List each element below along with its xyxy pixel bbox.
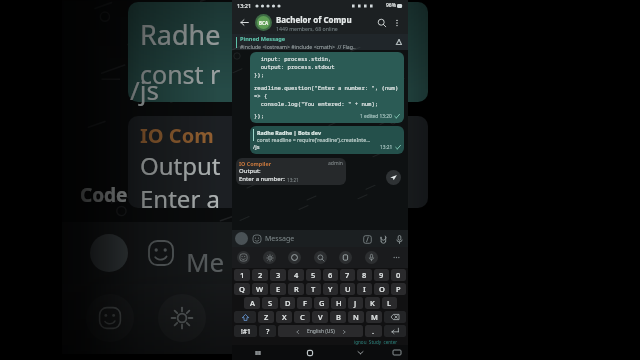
- staticText: W: [256, 284, 264, 294]
- staticText: C: [300, 312, 305, 322]
- button[interactable]: T: [306, 283, 321, 295]
- button[interactable]: J: [348, 297, 363, 309]
- button[interactable]: D: [280, 297, 295, 309]
- staticText: Enter a number:: [239, 175, 285, 183]
- staticText: console.log("You entered: " + num);: [254, 100, 379, 108]
- staticText: 6: [328, 270, 333, 280]
- button[interactable]: Message: [265, 234, 361, 244]
- staticText: output: process.stdout: [254, 63, 335, 71]
- staticText: Bachelor of Compu: [276, 14, 352, 25]
- staticText: 2: [258, 270, 263, 280]
- staticText: 96%: [386, 2, 396, 9]
- button[interactable]: Enter: [384, 325, 406, 337]
- staticText: Z: [264, 312, 269, 322]
- button[interactable]: 8: [357, 269, 372, 281]
- button[interactable]: B: [330, 311, 346, 323]
- button[interactable]: P: [391, 283, 406, 295]
- button[interactable]: Bachelor of Compu: [276, 14, 374, 32]
- button[interactable]: !#1: [234, 325, 257, 337]
- button[interactable]: Formatting: [361, 233, 373, 245]
- button[interactable]: Search: [374, 15, 390, 31]
- button[interactable]: V: [312, 311, 328, 323]
- button[interactable]: 5: [306, 269, 321, 281]
- staticText: input: process.stdin,: [254, 55, 332, 63]
- button[interactable]: Search: [314, 251, 327, 264]
- button[interactable]: N: [348, 311, 364, 323]
- staticText: N: [353, 312, 359, 322]
- button[interactable]: Pinned Message: [232, 34, 408, 50]
- button[interactable]: input: process.stdin,: [250, 52, 404, 123]
- button[interactable]: R: [288, 283, 304, 295]
- button[interactable]: U: [340, 283, 355, 295]
- button[interactable]: H: [331, 297, 346, 309]
- button[interactable]: C: [294, 311, 310, 323]
- button[interactable]: M: [366, 311, 382, 323]
- staticText: => {: [254, 92, 268, 100]
- button[interactable]: Home: [284, 345, 335, 360]
- button[interactable]: 1: [234, 269, 250, 281]
- staticText: 13:21: [287, 177, 299, 183]
- button[interactable]: 4: [288, 269, 304, 281]
- button[interactable]: X: [276, 311, 292, 323]
- button[interactable]: Hide keyboard: [335, 345, 386, 360]
- staticText: X: [282, 312, 287, 322]
- staticText: readline.question("Enter a number: ", (n…: [254, 84, 399, 92]
- button[interactable]: ?: [259, 325, 276, 337]
- button[interactable]: A: [244, 297, 260, 309]
- button[interactable]: Voice message: [393, 233, 405, 245]
- staticText: L: [387, 298, 392, 308]
- button[interactable]: W: [252, 283, 268, 295]
- button[interactable]: 2: [252, 269, 268, 281]
- button[interactable]: F: [297, 297, 312, 309]
- button[interactable]: Recents: [232, 345, 284, 360]
- button[interactable]: Settings: [263, 251, 276, 264]
- button[interactable]: K: [365, 297, 380, 309]
- staticText: J: [354, 298, 357, 308]
- staticText: BCA: [259, 20, 268, 26]
- button[interactable]: Forward: [386, 170, 401, 185]
- button[interactable]: Emoji: [251, 233, 262, 244]
- button[interactable]: More options: [390, 16, 404, 30]
- button[interactable]: Radhe Radhe | Bots dev: [250, 126, 404, 154]
- button[interactable]: Group avatar: [255, 14, 272, 31]
- staticText: ignou Study center: [354, 339, 398, 345]
- button[interactable]: Back: [236, 14, 253, 31]
- button[interactable]: I: [357, 283, 372, 295]
- button[interactable]: Keyboard layout: [386, 345, 408, 360]
- button[interactable]: Z: [258, 311, 274, 323]
- button[interactable]: Profile: [235, 232, 248, 245]
- button[interactable]: Y: [323, 283, 338, 295]
- button[interactable]: 9: [374, 269, 389, 281]
- staticText: B: [336, 312, 341, 322]
- button[interactable]: 3: [270, 269, 286, 281]
- staticText: D: [285, 298, 291, 308]
- staticText: admin: [328, 160, 343, 167]
- staticText: S: [268, 298, 273, 308]
- button[interactable]: Voice: [365, 251, 378, 264]
- button[interactable]: Space: [278, 325, 363, 337]
- staticText: #include <iostream> #include <cmath> // …: [240, 43, 356, 50]
- button[interactable]: Q: [234, 283, 250, 295]
- button[interactable]: Shift: [234, 311, 256, 323]
- button[interactable]: 7: [340, 269, 355, 281]
- staticText: });: [254, 71, 265, 79]
- button[interactable]: .: [365, 325, 382, 337]
- button[interactable]: G: [314, 297, 329, 309]
- button[interactable]: Clipboard: [339, 251, 352, 264]
- button[interactable]: S: [262, 297, 278, 309]
- staticText: 3: [276, 270, 281, 280]
- button[interactable]: L: [382, 297, 397, 309]
- button[interactable]: E: [270, 283, 286, 295]
- button[interactable]: More: [390, 251, 403, 264]
- button[interactable]: Attach: [377, 233, 389, 245]
- staticText: 5: [311, 270, 316, 280]
- staticText: English (US): [307, 328, 335, 335]
- button[interactable]: IO Compiler: [236, 158, 346, 185]
- button[interactable]: Theme: [288, 251, 301, 264]
- button[interactable]: O: [374, 283, 389, 295]
- button[interactable]: 0: [391, 269, 406, 281]
- staticText: 8: [362, 270, 367, 280]
- button[interactable]: 6: [323, 269, 338, 281]
- button[interactable]: Backspace: [384, 311, 406, 323]
- button[interactable]: Sticker: [237, 251, 250, 264]
